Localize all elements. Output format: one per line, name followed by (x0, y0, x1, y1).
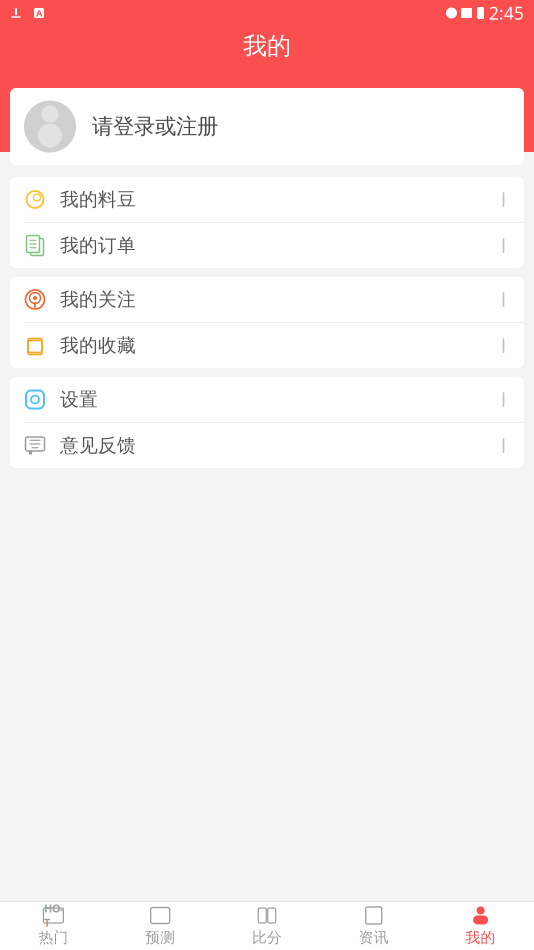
staticText: 意见反馈 (60, 434, 136, 457)
staticText: 我的 (243, 31, 291, 61)
staticText: 我的料豆 (60, 188, 136, 211)
button[interactable]: 我的订单 (10, 223, 524, 268)
button[interactable]: 我的料豆 (10, 177, 524, 222)
staticText: 请登录或注册 (92, 113, 218, 140)
button[interactable]: HOT (0, 903, 107, 949)
button[interactable]: 资讯 (320, 903, 427, 949)
staticText: 我的关注 (60, 288, 136, 311)
button[interactable]: 我的收藏 (10, 323, 524, 368)
button[interactable]: 意见反馈 (10, 423, 524, 468)
staticText: 设置 (60, 388, 98, 411)
staticText: HOT (44, 901, 63, 930)
staticText: A (36, 7, 42, 19)
button[interactable]: 我的关注 (10, 277, 524, 322)
staticText: 2:45 (489, 1, 524, 24)
button[interactable]: 预测 (107, 903, 214, 949)
staticText: 我的 (466, 928, 496, 946)
button[interactable]: 比分 (214, 903, 320, 949)
staticText: 我的订单 (60, 234, 136, 257)
staticText: 热门 (38, 928, 68, 946)
button[interactable]: 我的 (427, 903, 534, 949)
staticText: 比分 (252, 928, 282, 946)
staticText: 资讯 (359, 928, 389, 946)
button[interactable]: 设置 (10, 377, 524, 422)
button[interactable]: 请登录或注册 (10, 88, 524, 165)
staticText: 我的收藏 (60, 334, 136, 357)
staticText: 预测 (145, 928, 175, 946)
